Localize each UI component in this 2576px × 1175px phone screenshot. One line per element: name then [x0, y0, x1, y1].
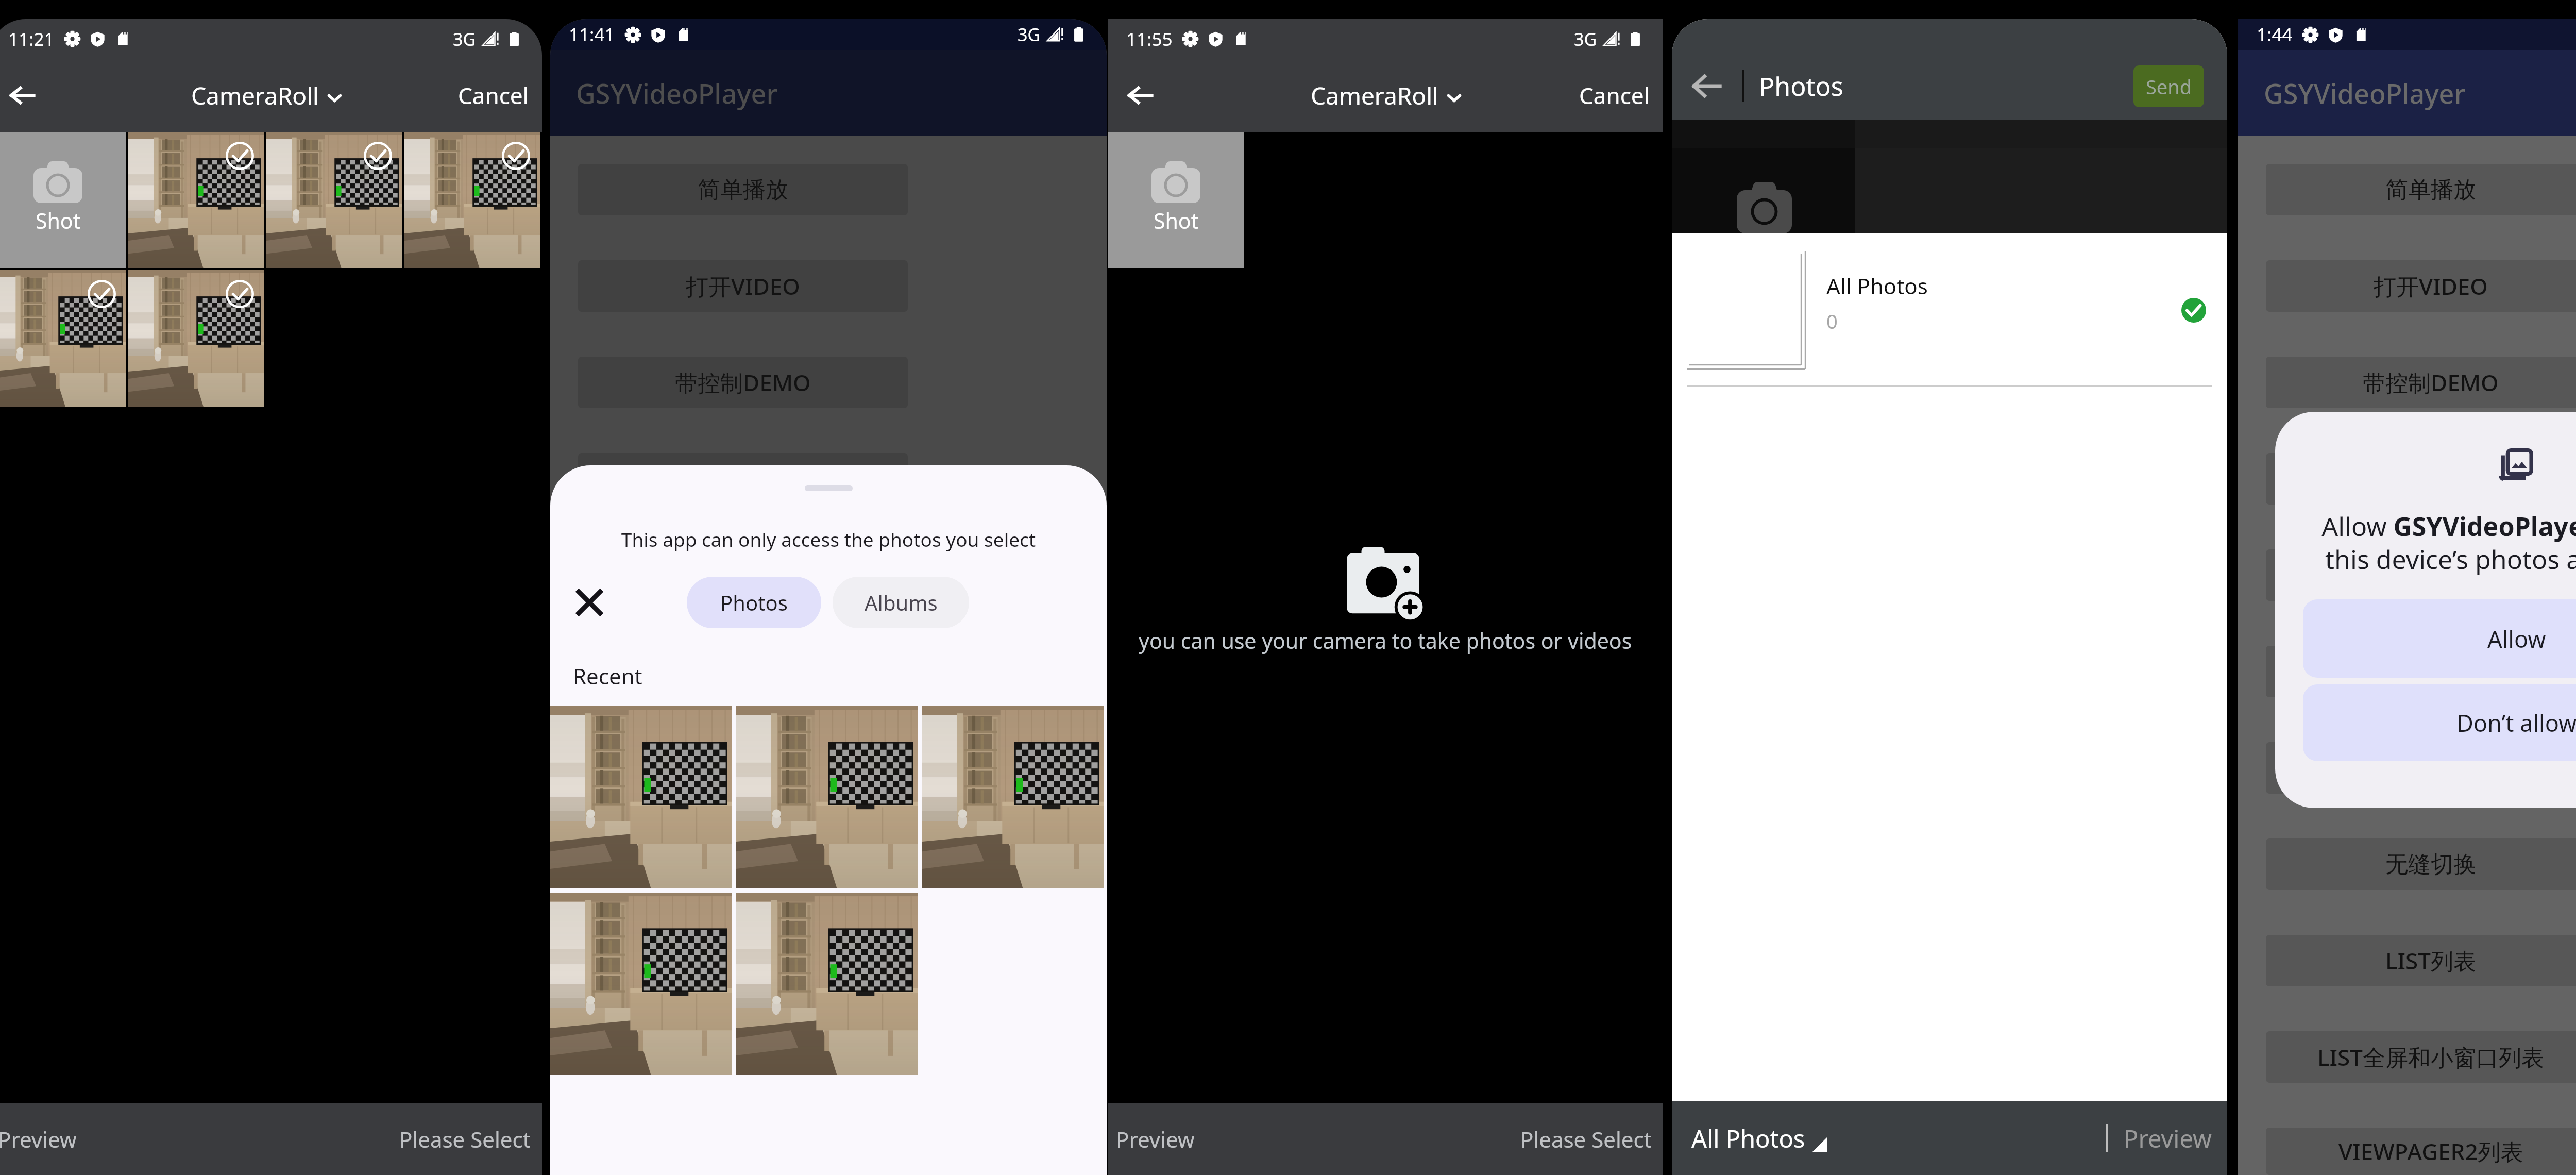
button[interactable]: Selected [404, 132, 540, 268]
staticText: 带控制DEMO [675, 367, 811, 398]
button[interactable] [922, 706, 1104, 888]
staticText: 简单播放 [698, 176, 788, 204]
button[interactable]: 打开VIDEO [578, 260, 908, 312]
other: Selected [502, 142, 530, 170]
staticText: 无缝切换 [698, 850, 788, 879]
button[interactable]: 无缝切换 [578, 838, 908, 890]
staticText: Please Select [1520, 1124, 1652, 1154]
staticText: 1:44 [2257, 22, 2293, 47]
button[interactable] [736, 893, 918, 1075]
staticText: Cancel [458, 80, 529, 111]
button[interactable]: Selected [128, 132, 264, 268]
button[interactable]: Cancel [458, 80, 529, 111]
button[interactable] [2266, 742, 2576, 794]
button[interactable] [2266, 646, 2576, 697]
staticText: Preview [2124, 1122, 2212, 1155]
button[interactable]: Selected [266, 132, 402, 268]
button[interactable]: Cancel [1579, 80, 1650, 111]
staticText: 3G [1574, 27, 1597, 51]
button[interactable]: 带控制DEMO [2266, 357, 2576, 408]
staticText: Recent [573, 661, 642, 691]
staticText: you can use your camera to take photos o… [1139, 626, 1632, 655]
button[interactable]: VIEWPAGER2列表 [2266, 1128, 2576, 1175]
button[interactable] [736, 706, 918, 888]
staticText: Allow [2487, 623, 2546, 654]
staticText: LIST列表 [698, 945, 788, 976]
button[interactable]: Close [568, 581, 611, 624]
staticText: Send [2146, 73, 2192, 100]
button[interactable]: Please Select [399, 1124, 531, 1154]
button[interactable]: 打开VIDEO [2266, 260, 2576, 312]
staticText: Cancel [1579, 80, 1650, 111]
button[interactable]: Send [2133, 65, 2204, 107]
button[interactable]: CameraRoll [191, 79, 341, 112]
button[interactable]: Back [1120, 75, 1161, 116]
staticText: This app can only access the photos you … [550, 526, 1107, 552]
other: Selected [88, 280, 116, 308]
staticText: 简单播放 [2385, 176, 2476, 204]
staticText: CameraRoll [1311, 79, 1438, 112]
button[interactable]: LIST全屏和小窗口列表 [578, 1031, 908, 1083]
staticText: 3G [453, 27, 476, 51]
staticText: VIEWPAGER2列表 [2338, 1136, 2523, 1167]
button[interactable]: Selected [0, 270, 126, 407]
button[interactable]: Photos [687, 577, 821, 628]
button[interactable]: CameraRoll [1311, 79, 1461, 112]
button[interactable] [578, 453, 908, 505]
button[interactable]: Please Select [1520, 1124, 1652, 1154]
staticText: Preview [0, 1124, 77, 1154]
button[interactable] [2266, 549, 2576, 601]
button[interactable] [578, 549, 908, 601]
button[interactable]: Back [1686, 65, 1727, 107]
button[interactable]: Shot [1108, 132, 1244, 268]
button[interactable]: 简单播放 [578, 164, 908, 215]
button[interactable] [2266, 453, 2576, 505]
button[interactable] [578, 646, 908, 697]
staticText: 11:41 [569, 22, 615, 47]
staticText: LIST全屏和小窗口列表 [2317, 1042, 2544, 1072]
button[interactable]: Don’t allow [2303, 684, 2576, 761]
button[interactable]: LIST列表 [578, 935, 908, 986]
staticText: 无缝切换 [2385, 850, 2476, 879]
button[interactable]: 无缝切换 [2266, 838, 2576, 890]
staticText: 3G [1018, 23, 1041, 46]
staticText: All Photos [1826, 271, 1928, 300]
button[interactable]: Shot [0, 132, 126, 268]
staticText: Albums [865, 589, 938, 616]
button[interactable]: Preview [1116, 1124, 1195, 1154]
staticText: All Photos [1691, 1122, 1805, 1155]
staticText: Please Select [399, 1124, 531, 1154]
staticText: 带控制DEMO [2363, 367, 2499, 398]
other: Selected [226, 142, 254, 170]
button[interactable] [550, 893, 732, 1075]
staticText: Shot [36, 206, 81, 235]
button[interactable] [550, 706, 732, 888]
staticText: 打开VIDEO [2374, 271, 2488, 301]
staticText: 打开VIDEO [686, 271, 800, 301]
staticText: Photos [720, 589, 788, 616]
button[interactable]: 简单播放 [2266, 164, 2576, 215]
staticText: LIST列表 [2385, 945, 2476, 976]
staticText: GSYVideoPlayer [576, 75, 778, 111]
staticText: LIST全屏和小窗口列表 [630, 1042, 856, 1072]
button[interactable]: Selected [128, 270, 264, 407]
button[interactable]: LIST全屏和小窗口列表 [2266, 1031, 2576, 1083]
staticText: 11:55 [1126, 27, 1173, 52]
staticText: Don’t allow [2456, 707, 2576, 738]
other: Selected [226, 280, 254, 308]
button[interactable]: Allow [2303, 599, 2576, 678]
staticText: Allow GSYVideoPlayer to access this devi… [2321, 509, 2576, 577]
other: Selected [364, 142, 392, 170]
button[interactable]: All Photos [1672, 233, 2227, 387]
button[interactable]: Albums [833, 577, 969, 628]
button[interactable] [578, 742, 908, 794]
staticText: CameraRoll [191, 79, 319, 112]
staticText: 11:21 [8, 27, 55, 52]
button[interactable]: Preview [0, 1124, 77, 1154]
button[interactable]: Back [2, 75, 43, 116]
button[interactable]: 带控制DEMO [578, 357, 908, 408]
staticText: Preview [1116, 1124, 1195, 1154]
button[interactable]: LIST列表 [2266, 935, 2576, 986]
